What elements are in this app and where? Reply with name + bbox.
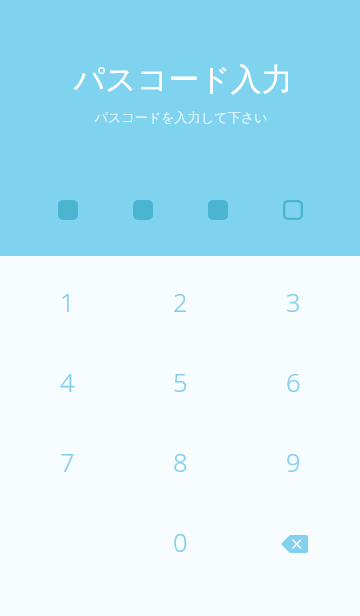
staticText: 9: [286, 445, 301, 480]
button[interactable]: 4: [10, 342, 124, 422]
button[interactable]: 7: [10, 422, 124, 502]
staticText: 5: [173, 365, 188, 400]
staticText: 2: [173, 285, 188, 320]
button[interactable]: 2: [124, 262, 237, 342]
button[interactable]: 0: [124, 502, 237, 582]
button[interactable]: 6: [237, 342, 350, 422]
staticText: 1: [60, 285, 75, 320]
staticText: 4: [60, 365, 75, 400]
staticText: 7: [60, 445, 75, 480]
staticText: 8: [173, 445, 188, 480]
staticText: 0: [173, 525, 188, 560]
staticText: パスコードを入力して下さい: [1, 109, 360, 126]
button[interactable]: 1: [10, 262, 124, 342]
button[interactable]: 9: [237, 422, 350, 502]
staticText: 3: [286, 285, 301, 320]
button[interactable]: 5: [124, 342, 237, 422]
button[interactable]: 3: [237, 262, 350, 342]
button[interactable]: 8: [124, 422, 237, 502]
staticText: パスコード入力: [3, 60, 360, 99]
staticText: 6: [286, 365, 301, 400]
button[interactable]: Backspace: [237, 502, 350, 582]
